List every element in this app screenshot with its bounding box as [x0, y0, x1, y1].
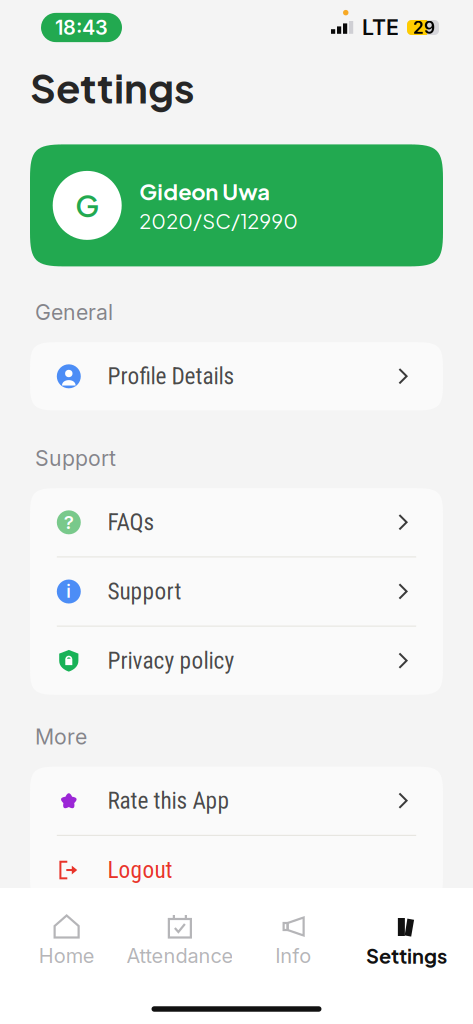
staticText: Settings [366, 943, 447, 968]
staticText: i [66, 581, 71, 602]
staticText: 29 [413, 17, 435, 38]
staticText: Profile Details [108, 363, 235, 390]
button[interactable]: Rate this App [30, 767, 443, 835]
staticText: Support [35, 445, 116, 471]
staticText: Home [39, 943, 95, 968]
button[interactable]: Info [236, 912, 350, 968]
staticText: 2020/SC/12990 [139, 208, 298, 233]
staticText: Support [108, 578, 182, 605]
staticText: LTE [362, 15, 399, 40]
staticText: General [35, 299, 113, 325]
button[interactable]: Logout [30, 836, 443, 904]
button[interactable]: Home [10, 912, 123, 968]
button[interactable]: Privacy policy [30, 627, 443, 695]
staticText: Attendance [126, 943, 233, 968]
staticText: Privacy policy [108, 647, 235, 674]
button[interactable]: G [30, 144, 443, 266]
button[interactable]: Attendance [123, 912, 236, 968]
button[interactable]: ? [30, 488, 443, 556]
staticText: Gideon Uwa [139, 177, 270, 205]
staticText: G [75, 187, 99, 224]
staticText: 18:43 [55, 15, 108, 40]
button[interactable]: Profile Details [30, 342, 443, 410]
staticText: FAQs [108, 509, 155, 536]
staticText: Rate this App [108, 787, 230, 814]
button[interactable]: i [30, 557, 443, 626]
button[interactable]: Settings [350, 912, 463, 968]
staticText: Settings [30, 62, 195, 112]
staticText: Info [275, 943, 311, 968]
staticText: More [35, 724, 87, 750]
staticText: ? [64, 511, 74, 534]
staticText: Logout [108, 856, 173, 884]
